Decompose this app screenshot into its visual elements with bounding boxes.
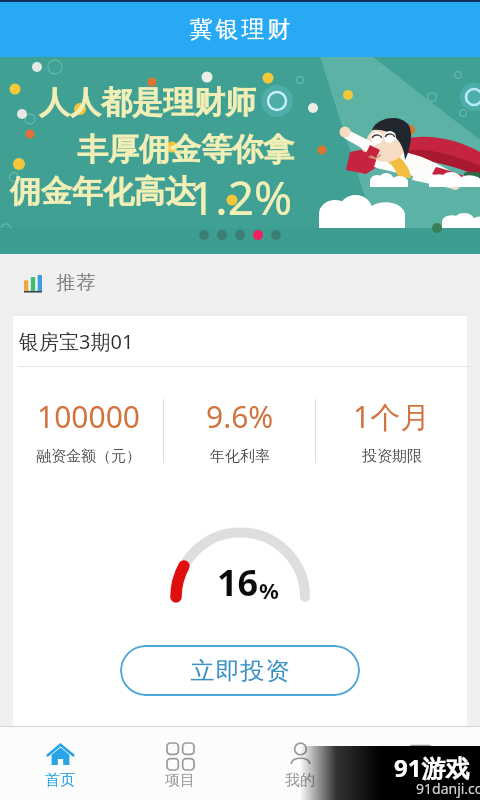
staticText: 佣金年化高达 [10, 172, 196, 211]
staticText: 100000 [37, 396, 140, 437]
staticText: 冀银理财 [188, 15, 292, 44]
staticText: 投资期限 [362, 447, 422, 466]
button[interactable]: 银房宝3期01 [19, 312, 467, 370]
staticText: % [259, 575, 279, 605]
button[interactable]: Mine [240, 727, 360, 800]
staticText: 1.2% [189, 166, 293, 229]
staticText: 16 [217, 558, 259, 607]
staticText: 人人都是理财师 [39, 83, 256, 122]
button[interactable]: 人人都是理财师 [0, 57, 480, 253]
staticText: 银房宝3期01 [19, 328, 134, 355]
staticText: 推荐 [56, 271, 96, 295]
staticText: 我的 [285, 771, 315, 790]
staticText: 年化利率 [210, 447, 270, 466]
staticText: 项目 [165, 771, 195, 790]
button[interactable]: Projects [120, 727, 240, 800]
staticText: 更多 [405, 771, 435, 790]
button[interactable]: More [360, 727, 480, 800]
staticText: 91danji.com [416, 779, 480, 798]
button[interactable]: Home [0, 727, 120, 800]
staticText: 丰厚佣金等你拿 [77, 130, 294, 169]
staticText: 立即投资 [190, 656, 290, 686]
staticText: 首页 [45, 771, 75, 790]
staticText: 9.6% [206, 396, 274, 437]
staticText: 融资金额（元） [36, 447, 141, 466]
button[interactable]: 立即投资 [120, 645, 360, 696]
staticText: 1个月 [353, 396, 431, 437]
staticText: 91游戏 [394, 751, 470, 784]
